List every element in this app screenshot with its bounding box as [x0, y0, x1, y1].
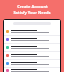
button[interactable]: [4, 36, 60, 43]
button[interactable]: [4, 28, 60, 35]
button[interactable]: [4, 52, 60, 59]
staticText: Satisfy Your Needs: [13, 10, 51, 15]
button[interactable]: [4, 60, 60, 67]
button[interactable]: [4, 68, 60, 72]
button[interactable]: [4, 44, 60, 51]
staticText: Create Account: [17, 4, 48, 9]
